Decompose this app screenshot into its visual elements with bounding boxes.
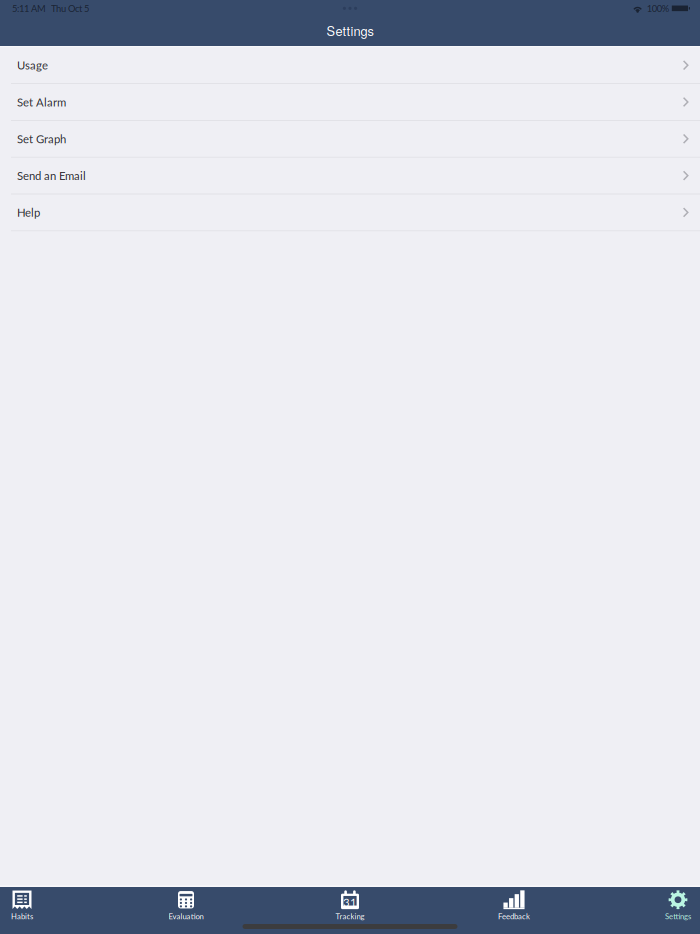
staticText: Send an Email bbox=[17, 169, 86, 182]
staticText: 31 bbox=[343, 896, 357, 909]
staticText: Set Graph bbox=[17, 132, 66, 146]
button[interactable]: Usage bbox=[0, 47, 700, 84]
staticText: Thu Oct 5 bbox=[51, 3, 89, 14]
button[interactable]: Settings bbox=[656, 887, 700, 934]
button[interactable]: Help bbox=[0, 194, 700, 231]
button[interactable]: Send an Email bbox=[0, 158, 700, 194]
button[interactable]: Habits bbox=[0, 887, 44, 934]
staticText: Set Alarm bbox=[17, 95, 66, 109]
staticText: Habits bbox=[11, 911, 33, 921]
staticText: Evaluation bbox=[168, 911, 203, 921]
button[interactable]: 31 bbox=[328, 887, 372, 934]
staticText: Feedback bbox=[498, 911, 530, 921]
button[interactable]: Evaluation bbox=[164, 887, 208, 934]
button[interactable]: Set Graph bbox=[0, 121, 700, 158]
staticText: Settings bbox=[665, 911, 691, 921]
staticText: 5:11 AM bbox=[12, 3, 46, 14]
button[interactable]: Feedback bbox=[492, 887, 536, 934]
staticText: Usage bbox=[17, 58, 48, 72]
staticText: Tracking bbox=[335, 911, 364, 921]
staticText: 100% bbox=[647, 3, 669, 14]
staticText: Help bbox=[17, 206, 40, 219]
button[interactable]: Set Alarm bbox=[0, 84, 700, 121]
staticText: Settings bbox=[326, 21, 373, 40]
